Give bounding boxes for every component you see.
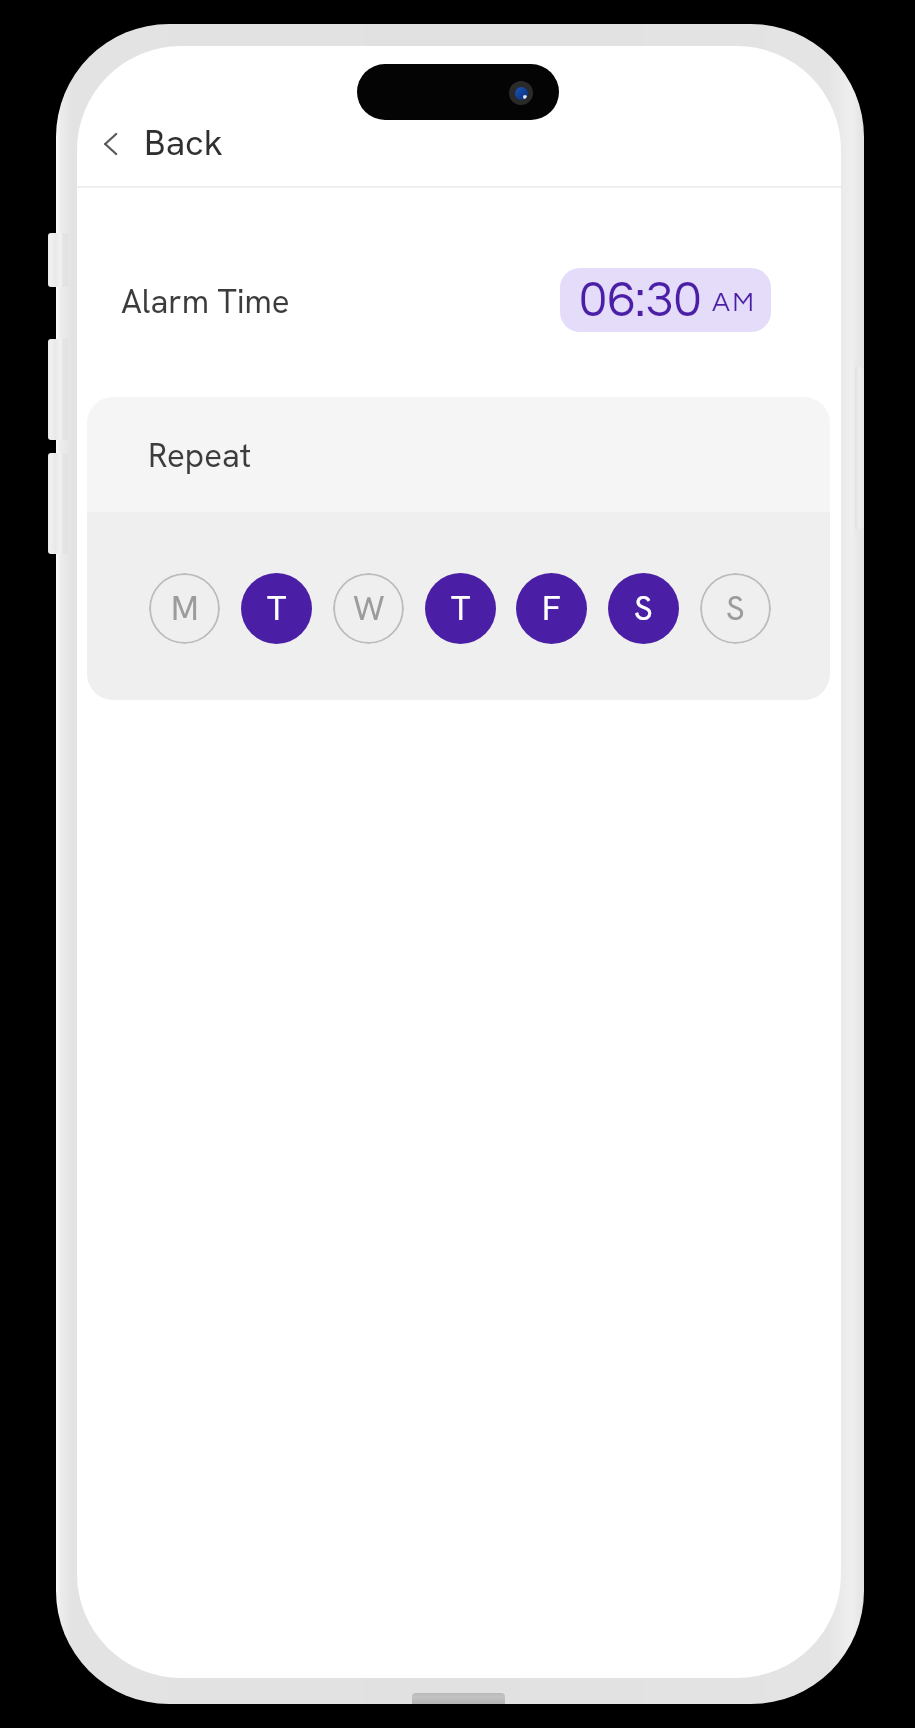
staticText: Alarm Time <box>121 280 290 323</box>
button[interactable]: Back <box>91 115 237 173</box>
staticText: Repeat <box>148 434 252 477</box>
button[interactable]: Repeat <box>87 397 830 512</box>
staticText: F <box>542 587 561 630</box>
staticText: T <box>267 587 287 630</box>
staticText: S <box>634 587 653 630</box>
button[interactable]: F <box>516 573 587 644</box>
button[interactable]: T <box>425 573 496 644</box>
button[interactable]: T <box>241 573 312 644</box>
button[interactable]: M <box>149 573 220 644</box>
staticText: W <box>353 587 385 630</box>
button[interactable]: 06:30 <box>560 268 771 332</box>
button[interactable]: Side button <box>48 233 68 287</box>
staticText: AM <box>712 289 757 317</box>
staticText: Back <box>144 119 223 166</box>
staticText: 06:30 <box>579 274 702 327</box>
staticText: T <box>451 587 471 630</box>
staticText: M <box>171 587 199 630</box>
button[interactable]: W <box>333 573 404 644</box>
button[interactable]: Power <box>855 367 864 529</box>
button[interactable]: S <box>608 573 679 644</box>
button[interactable]: S <box>700 573 771 644</box>
button[interactable]: Side button <box>48 453 68 554</box>
staticText: S <box>726 587 745 630</box>
button[interactable]: Side button <box>48 339 68 440</box>
